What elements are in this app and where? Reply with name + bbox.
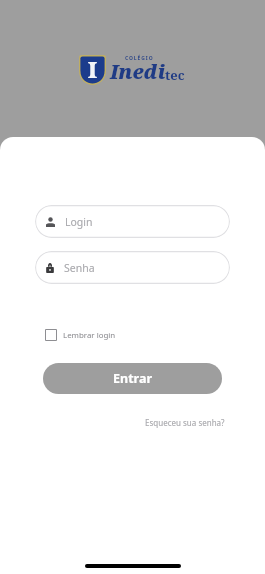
staticText: Login bbox=[65, 215, 93, 229]
staticText: Lembrar login bbox=[63, 330, 116, 341]
button[interactable]: Password bbox=[35, 251, 230, 284]
staticText: Inedi bbox=[110, 58, 166, 85]
staticText: Entrar bbox=[113, 370, 152, 387]
staticText: Esqueceu sua senha? bbox=[145, 417, 225, 428]
other: Password bbox=[46, 263, 54, 273]
button[interactable]: Entrar bbox=[43, 363, 222, 394]
other: User bbox=[46, 217, 55, 227]
staticText: Senha bbox=[64, 261, 95, 275]
button[interactable]: User bbox=[35, 205, 230, 238]
staticText: tec bbox=[165, 66, 185, 84]
button[interactable]: Esqueceu sua senha? bbox=[139, 413, 265, 432]
staticText: COLÉGIO bbox=[125, 55, 154, 62]
button[interactable]: Lembrar login bbox=[45, 329, 116, 341]
